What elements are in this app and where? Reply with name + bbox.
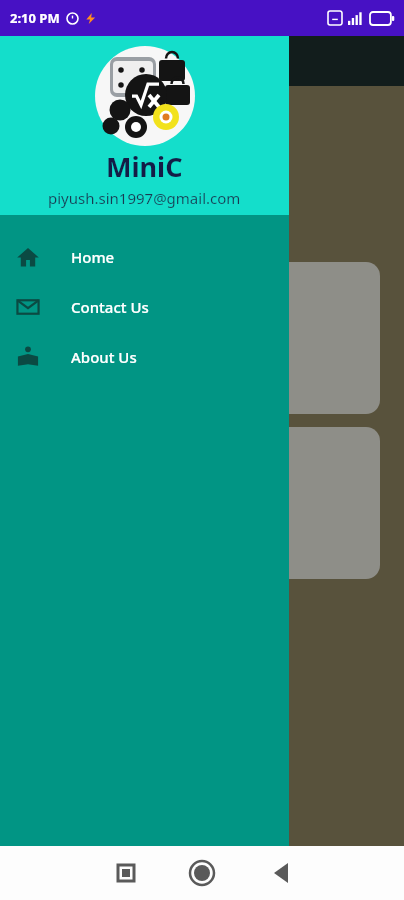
- button[interactable]: Recents: [98, 846, 168, 900]
- staticText: About Us: [71, 347, 137, 367]
- button[interactable]: Back: [252, 846, 322, 900]
- staticText: Home: [71, 247, 115, 267]
- button[interactable]: About Us: [0, 332, 289, 382]
- staticText: MiniC: [106, 148, 183, 185]
- button[interactable]: Converter: [24, 262, 380, 414]
- button[interactable]: Calculator: [24, 427, 380, 579]
- staticText: 2:10 PM: [10, 9, 60, 27]
- staticText: piyush.sin1997@gmail.com: [48, 188, 241, 208]
- button[interactable]: Home: [167, 846, 237, 900]
- button[interactable]: Contact Us: [0, 282, 289, 332]
- button[interactable]: Home: [0, 232, 289, 282]
- staticText: Contact Us: [71, 297, 149, 317]
